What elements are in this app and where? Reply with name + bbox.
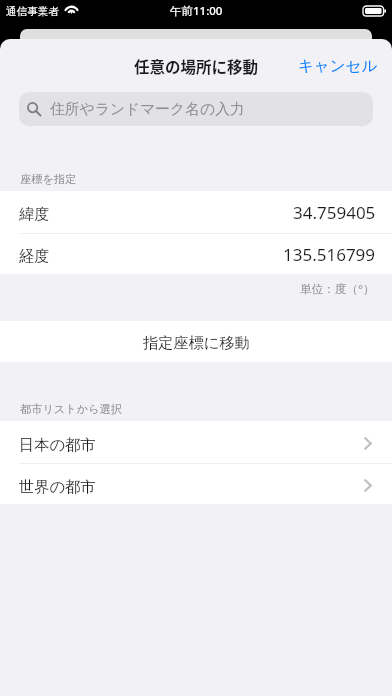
staticText: 午前11:00 [170, 3, 223, 19]
staticText: 指定座標に移動 [143, 333, 250, 352]
staticText: キャンセル [298, 56, 378, 76]
staticText: 都市リストから選択 [20, 402, 122, 416]
staticText: 住所やランドマーク名の入力 [50, 100, 245, 119]
other: 世界の都市 [364, 479, 372, 492]
staticText: 座標を指定 [20, 172, 77, 186]
button[interactable]: 指定座標に移動 [0, 321, 392, 362]
button[interactable]: 日本の都市 [0, 421, 392, 463]
button[interactable]: 緯度 [0, 191, 392, 233]
other: 日本の都市 [364, 437, 372, 450]
staticText: 世界の都市 [19, 477, 96, 496]
staticText: 34.759405 [293, 201, 376, 224]
button[interactable]: 経度 [0, 234, 392, 274]
staticText: 任意の場所に移動 [134, 55, 259, 77]
staticText: 日本の都市 [19, 435, 96, 454]
staticText: 135.516799 [283, 243, 376, 266]
button[interactable]: キャンセル [282, 46, 392, 86]
staticText: 単位：度（°） [300, 281, 375, 297]
staticText: 緯度 [19, 204, 50, 223]
button[interactable]: 住所やランドマーク名の入力 [19, 92, 373, 126]
button[interactable]: 世界の都市 [0, 464, 392, 504]
staticText: 経度 [19, 246, 50, 265]
staticText: 通信事業者 [6, 5, 59, 18]
